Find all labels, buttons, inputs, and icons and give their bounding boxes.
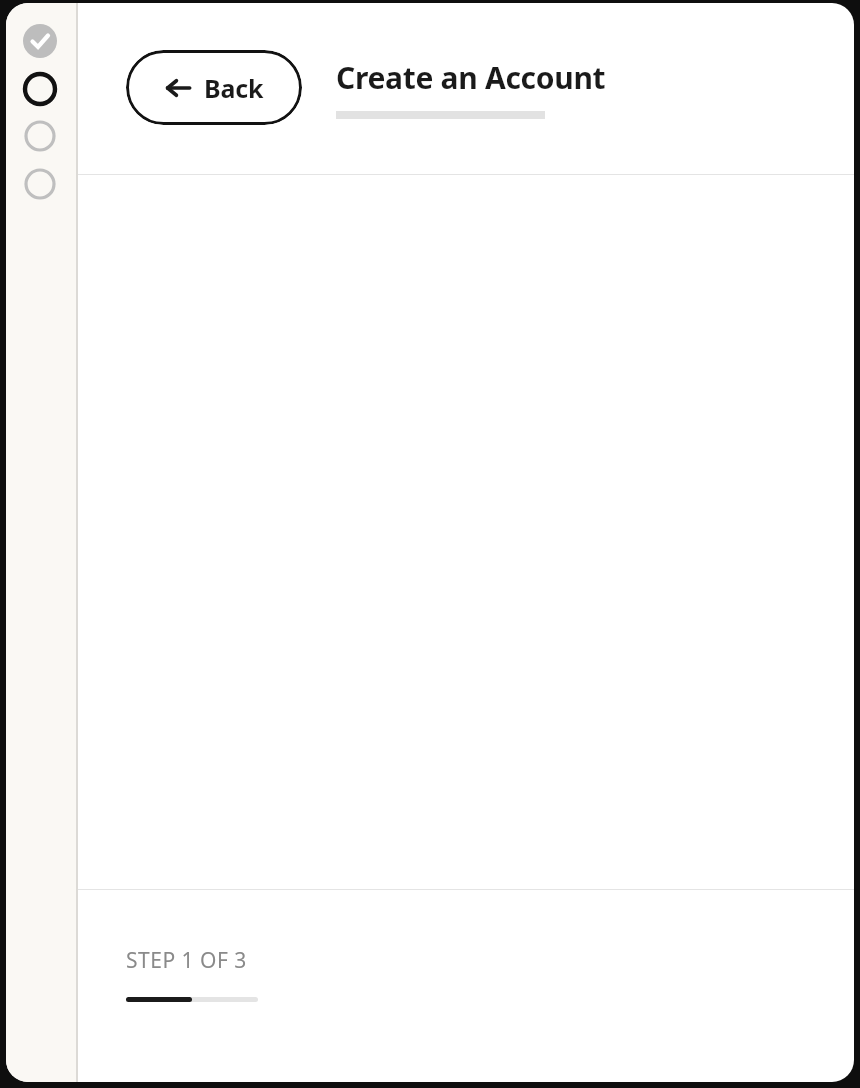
staticText: Back — [204, 71, 264, 105]
staticText: STEP 1 OF 3 — [126, 946, 247, 975]
staticText: Create an Account — [336, 57, 606, 98]
button[interactable]: Back — [126, 50, 302, 125]
